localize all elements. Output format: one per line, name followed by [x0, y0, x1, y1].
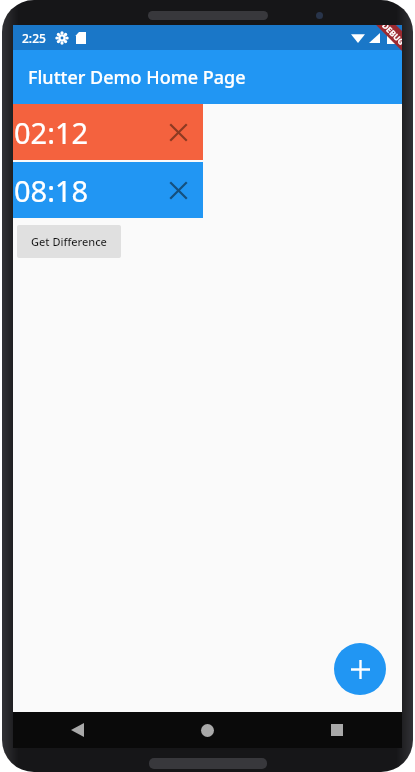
- button[interactable]: Back: [13, 712, 142, 748]
- button[interactable]: Recent apps: [272, 712, 402, 748]
- button[interactable]: 08:18: [13, 162, 203, 218]
- staticText: Flutter Demo Home Page: [28, 65, 246, 90]
- staticText: 2:25: [22, 30, 46, 46]
- button[interactable]: Remove: [165, 177, 191, 203]
- button[interactable]: 02:12: [13, 104, 203, 160]
- staticText: DEBUG: [380, 25, 402, 47]
- staticText: Get Difference: [31, 234, 107, 249]
- button[interactable]: Add: [334, 643, 386, 695]
- button[interactable]: Remove: [165, 119, 191, 145]
- staticText: 02:12: [14, 113, 89, 152]
- button[interactable]: Get Difference: [17, 225, 121, 258]
- button[interactable]: Home: [142, 712, 272, 748]
- staticText: 08:18: [14, 171, 89, 210]
